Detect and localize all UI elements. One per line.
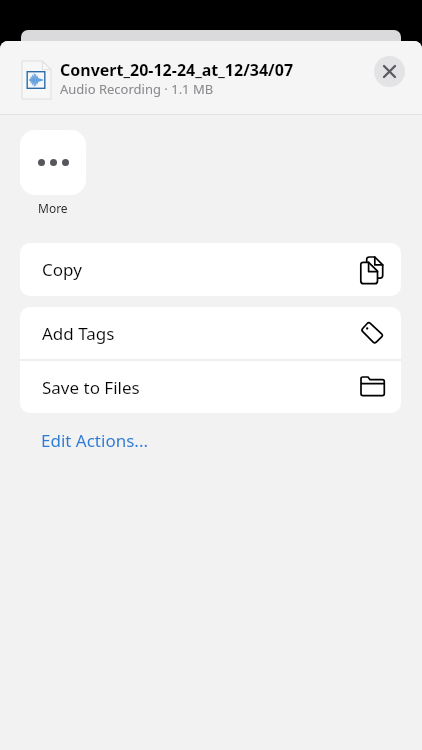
staticText: More — [38, 200, 68, 216]
button[interactable]: Copy — [20, 243, 401, 296]
staticText: Copy — [42, 258, 82, 281]
staticText: Edit Actions... — [41, 429, 148, 452]
staticText: Audio Recording · 1.1 MB — [60, 80, 214, 98]
button[interactable]: Close — [374, 56, 405, 87]
button[interactable]: Add Tags — [20, 307, 401, 359]
staticText: Convert_20-12-24_at_12/34/07 — [60, 59, 294, 81]
button[interactable]: Save to Files — [20, 361, 401, 413]
staticText: Save to Files — [42, 376, 140, 399]
staticText: Add Tags — [42, 322, 115, 345]
button[interactable]: Edit Actions... — [41, 429, 148, 452]
button[interactable]: More — [20, 130, 86, 216]
